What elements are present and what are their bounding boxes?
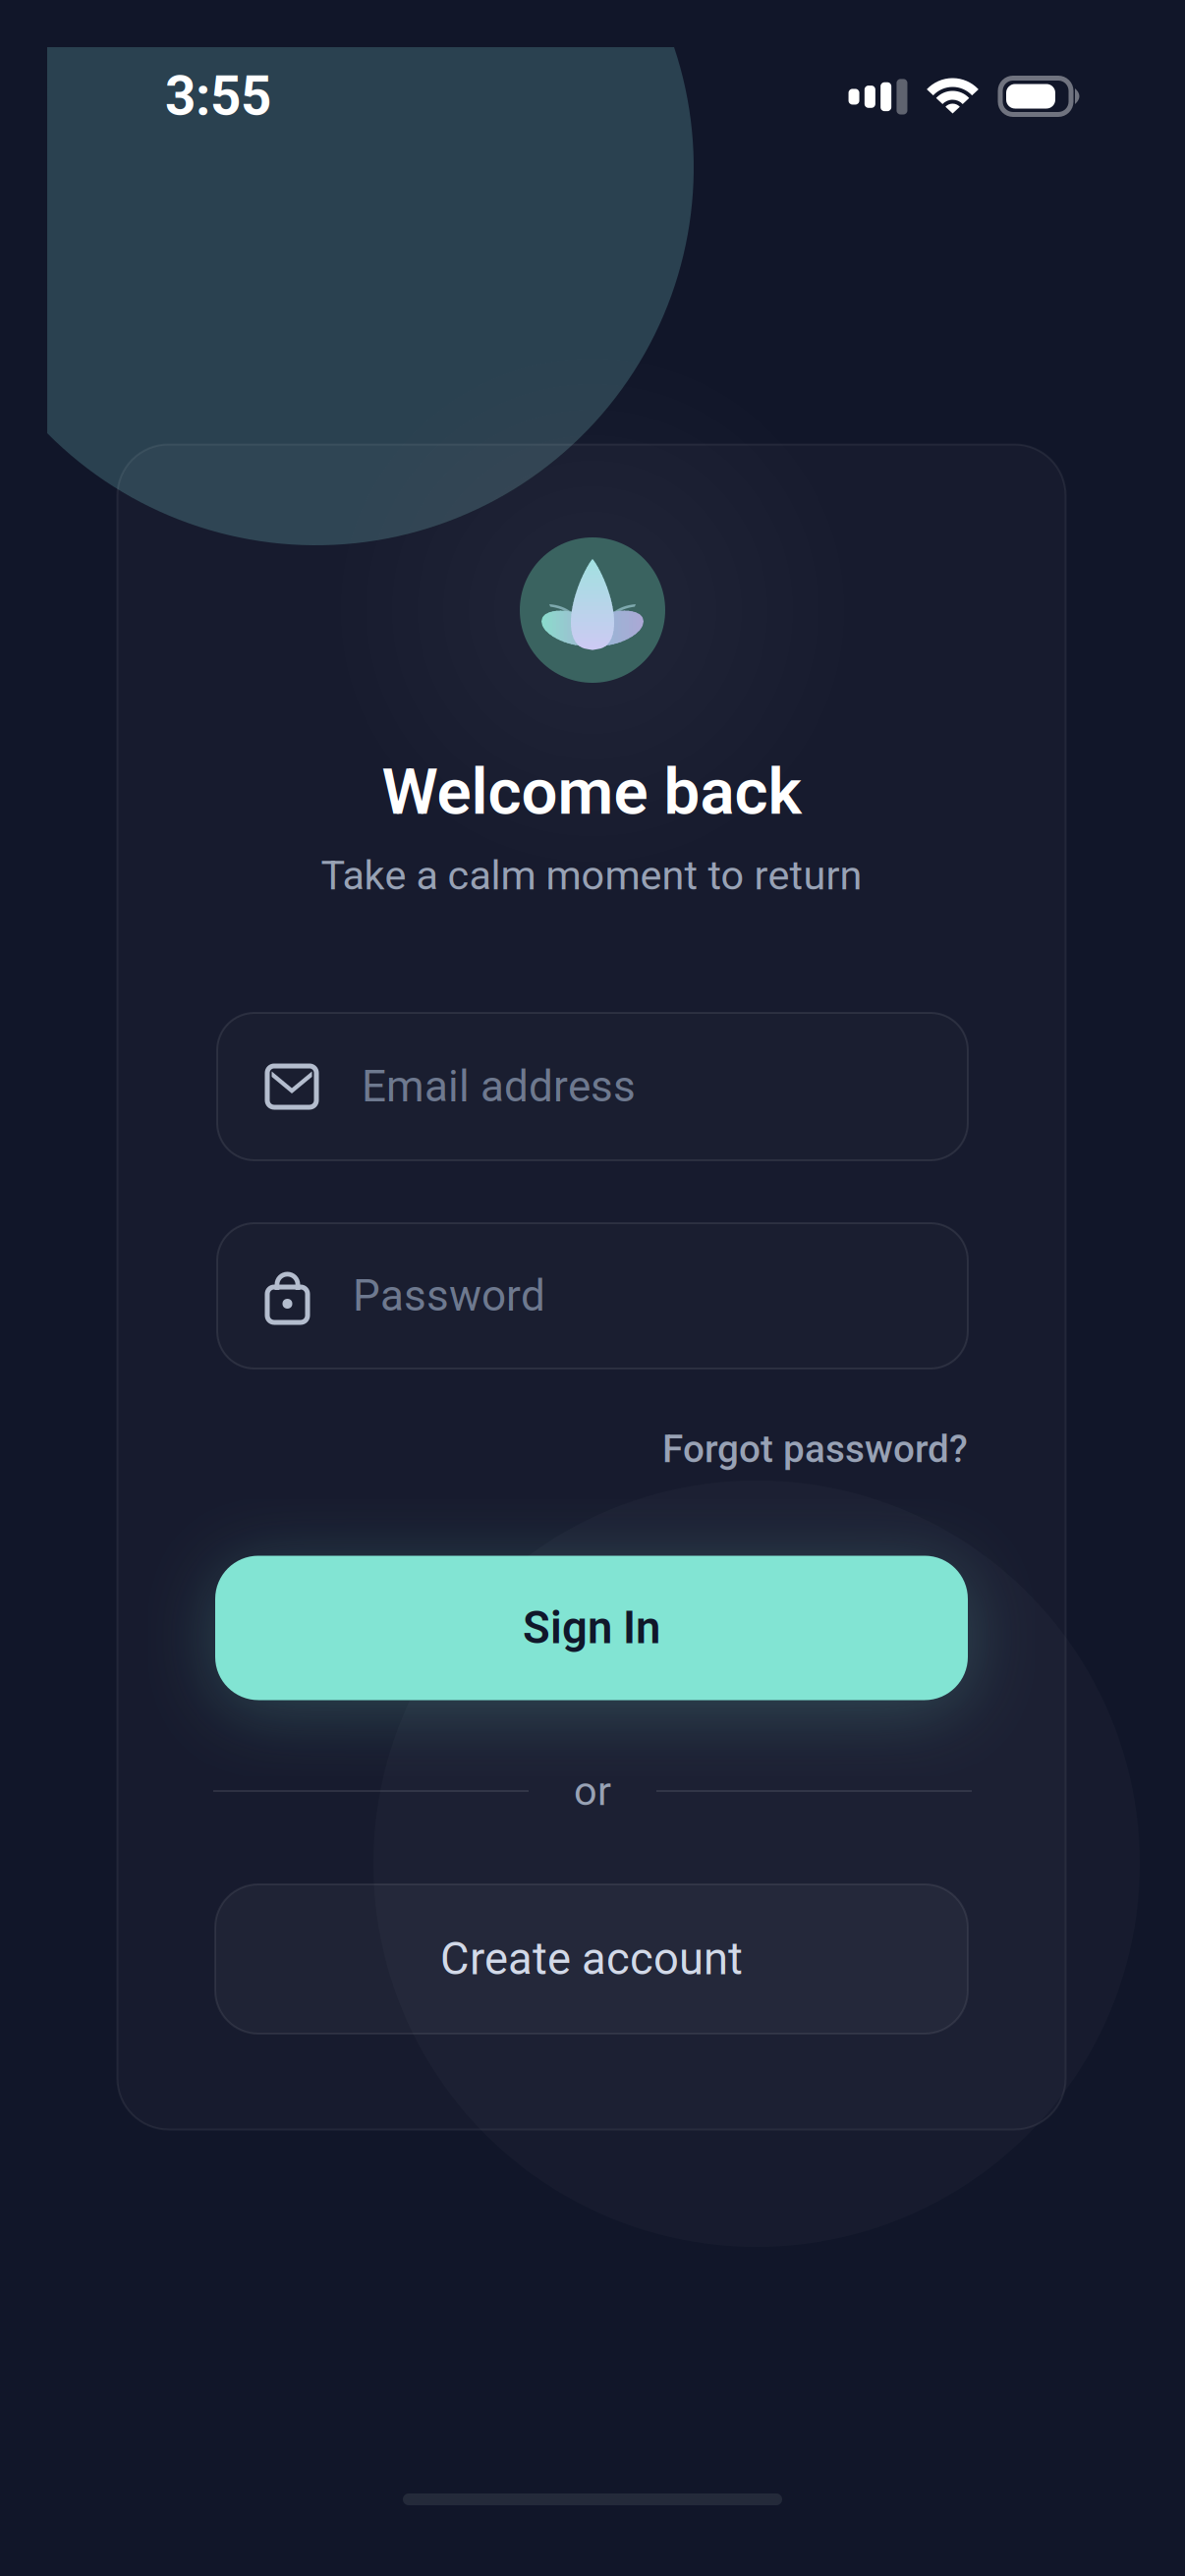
button[interactable]: Forgot password? xyxy=(644,1418,968,1481)
staticText: Welcome back xyxy=(382,754,801,829)
staticText: Take a calm moment to return xyxy=(321,852,862,899)
staticText: Create account xyxy=(440,1933,743,1985)
staticText: Forgot password? xyxy=(662,1427,968,1471)
staticText: 3:55 xyxy=(165,65,271,128)
staticText: or xyxy=(574,1767,611,1815)
staticText: Password xyxy=(353,1271,545,1321)
button[interactable]: Create account xyxy=(215,1884,968,2034)
staticText: Sign In xyxy=(523,1602,660,1654)
button[interactable]: Sign In xyxy=(215,1556,968,1700)
staticText: Email address xyxy=(362,1061,636,1112)
